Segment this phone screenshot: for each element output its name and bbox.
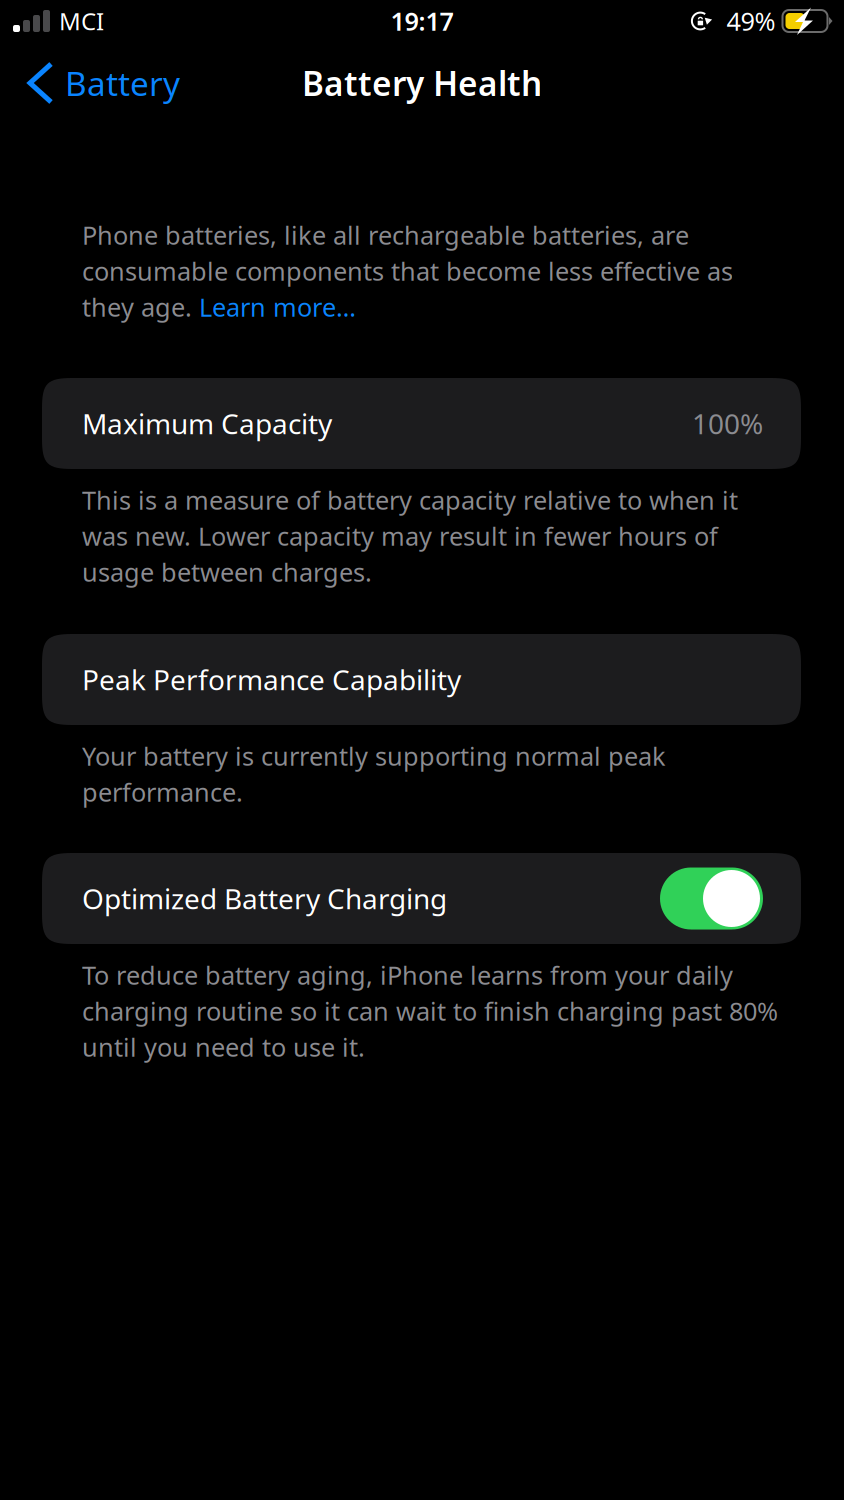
staticText: Phone batteries, like all rechargeable b… — [82, 218, 689, 252]
button[interactable]: Optimized Battery Charging — [42, 853, 801, 944]
staticText: 19:17 — [390, 4, 453, 38]
staticText: To reduce battery aging, iPhone learns f… — [82, 958, 733, 992]
button[interactable]: Optimized Battery Charging, on — [660, 867, 763, 929]
staticText: performance. — [82, 775, 243, 809]
staticText: This is a measure of battery capacity re… — [82, 483, 738, 517]
staticText: Learn more… — [199, 290, 356, 324]
staticText: until you need to use it. — [82, 1030, 365, 1064]
staticText: MCI — [59, 5, 104, 37]
staticText: consumable components that become less e… — [82, 254, 733, 288]
button[interactable]: Learn more… — [199, 290, 356, 324]
staticText: was new. Lower capacity may result in fe… — [82, 519, 718, 553]
staticText: they age. — [82, 290, 199, 324]
staticText: Battery — [65, 61, 180, 105]
staticText: Maximum Capacity — [82, 405, 332, 442]
staticText: Battery Health — [302, 61, 542, 105]
button[interactable]: Back to Battery — [0, 45, 194, 107]
staticText: 100% — [692, 405, 763, 442]
button[interactable]: Maximum Capacity — [42, 378, 801, 469]
button[interactable]: Peak Performance Capability — [42, 634, 801, 725]
staticText: Optimized Battery Charging — [82, 880, 447, 917]
staticText: 49% — [726, 4, 775, 38]
staticText: Peak Performance Capability — [82, 661, 461, 698]
staticText: charging routine so it can wait to finis… — [82, 994, 778, 1028]
staticText: Your battery is currently supporting nor… — [82, 739, 666, 773]
staticText: usage between charges. — [82, 555, 372, 589]
